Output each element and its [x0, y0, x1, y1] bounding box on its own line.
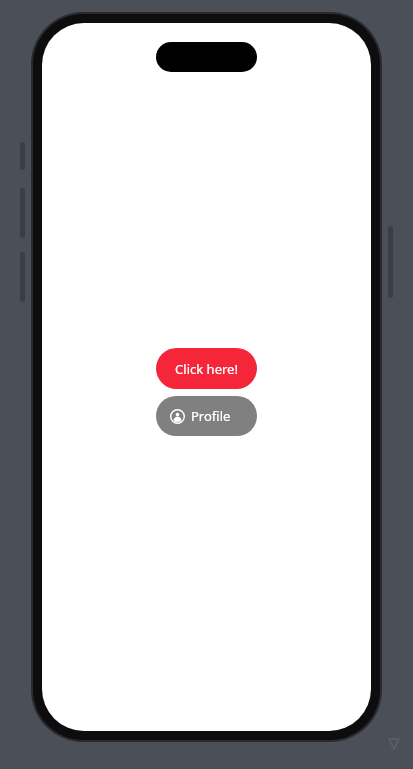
staticText: Click here! — [175, 360, 238, 378]
button[interactable]: Profile — [156, 396, 257, 436]
other: Profile — [170, 409, 185, 424]
button[interactable]: Click here! — [156, 348, 257, 389]
staticText: Profile — [191, 407, 231, 425]
